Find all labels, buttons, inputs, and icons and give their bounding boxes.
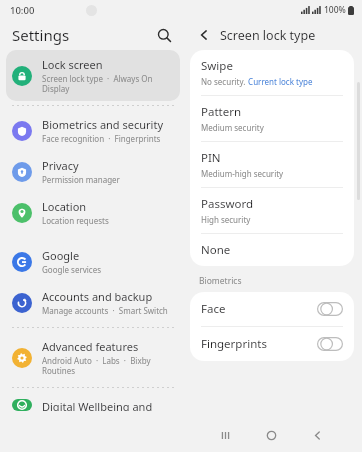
button[interactable]: Swipe	[190, 50, 354, 95]
staticText: Google services	[42, 264, 102, 275]
staticText: Accounts and backup	[42, 289, 153, 304]
staticText: Manage accounts · Smart Switch	[42, 305, 168, 316]
button[interactable]: Back	[302, 420, 332, 450]
staticText: Biometrics	[199, 275, 242, 287]
staticText: Lock screen	[42, 57, 103, 72]
staticText: Location	[42, 199, 87, 214]
staticText: Medium security	[201, 122, 264, 133]
staticText: Swipe	[201, 58, 233, 74]
staticText: High security	[201, 214, 251, 225]
button[interactable]: Recents	[210, 420, 240, 450]
staticText: Password	[201, 196, 254, 212]
button[interactable]: Advanced features	[6, 332, 180, 383]
staticText: Android Auto · Labs · Bixby Routines	[42, 355, 174, 376]
staticText: Biometrics and security	[42, 117, 163, 132]
button[interactable]: Biometrics and security	[6, 110, 180, 151]
button[interactable]: Privacy	[6, 151, 180, 192]
button[interactable]: Face	[190, 292, 354, 326]
button[interactable]: Digital Wellbeing and parental controls	[6, 392, 180, 418]
button[interactable]: Pattern	[190, 96, 354, 141]
staticText: Medium-high security	[201, 168, 284, 179]
staticText: 100%	[324, 4, 346, 16]
staticText: Face recognition · Fingerprints	[42, 133, 161, 144]
staticText: Settings	[12, 25, 70, 45]
staticText: Face	[201, 301, 317, 317]
staticText: Google	[42, 248, 80, 263]
staticText: Screen lock type · Always On Display	[42, 73, 174, 94]
staticText: Current lock type	[246, 76, 313, 87]
button[interactable]: PIN	[190, 142, 354, 187]
button[interactable]: Home	[256, 420, 286, 450]
staticText: Advanced features	[42, 339, 139, 354]
button[interactable]: Password	[190, 188, 354, 233]
button[interactable]: Location	[6, 192, 180, 233]
button[interactable]: Accounts and backup	[6, 282, 180, 323]
button[interactable]: Search	[152, 23, 176, 47]
button[interactable]: Fingerprints	[190, 327, 354, 361]
staticText: Screen lock type	[220, 27, 316, 44]
staticText: No security.	[201, 76, 246, 87]
staticText: Digital Wellbeing and parental controls	[42, 399, 174, 411]
staticText: None	[201, 242, 231, 258]
staticText: 10:00	[10, 4, 35, 17]
button[interactable]: Lock screen	[6, 50, 180, 101]
button[interactable]: Back	[192, 23, 216, 47]
staticText: Pattern	[201, 104, 242, 120]
staticText: Location requests	[42, 215, 109, 226]
staticText: Fingerprints	[201, 336, 317, 352]
button[interactable]: None	[190, 234, 354, 266]
staticText: PIN	[201, 150, 221, 166]
staticText: Privacy	[42, 158, 79, 173]
button[interactable]: Google	[6, 241, 180, 282]
staticText: Permission manager	[42, 174, 120, 185]
